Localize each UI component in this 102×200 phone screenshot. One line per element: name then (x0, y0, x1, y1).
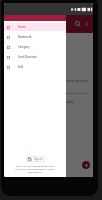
button[interactable]: Bookmark (4, 32, 66, 42)
button[interactable]: Add question (82, 161, 90, 169)
staticText: Category (18, 45, 30, 49)
button[interactable]: More options (83, 20, 91, 28)
button[interactable]: Category (4, 42, 66, 52)
staticText: Question Page (7, 38, 35, 43)
button[interactable]: Info (4, 62, 66, 72)
staticText: Sign in (34, 157, 43, 161)
staticText: Info (18, 65, 24, 69)
button[interactable]: Search (73, 19, 83, 29)
staticText: Bookmark (18, 35, 32, 39)
staticText: What is the best daily routine for Skin … (7, 100, 75, 104)
button[interactable]: Send Question (4, 52, 66, 62)
staticText: Send Question (18, 55, 37, 59)
button[interactable]: Home (4, 22, 66, 32)
button[interactable]: Sign in (26, 156, 45, 162)
staticText: How do i know if my skin is oily or dry?… (7, 79, 89, 87)
staticText: Home (18, 25, 26, 29)
staticText: Sign in to your Google account and sync … (14, 165, 56, 174)
